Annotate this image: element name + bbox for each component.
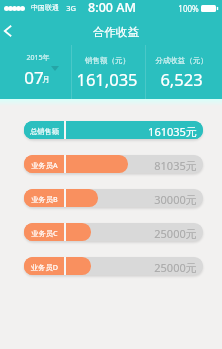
button[interactable]: 业务员A	[24, 155, 203, 173]
staticText: 30000元	[154, 192, 197, 207]
staticText: 161035元	[148, 124, 197, 139]
staticText: 2015年	[26, 53, 50, 63]
staticText: 07	[24, 66, 44, 89]
button[interactable]: 业务员C	[24, 223, 203, 241]
staticText: 25000元	[154, 226, 197, 241]
button[interactable]: 业务员D	[24, 257, 203, 275]
button[interactable]: Select month	[0, 44, 71, 102]
button[interactable]: Back	[0, 19, 20, 43]
staticText: 8:00 AM	[88, 0, 136, 15]
staticText: 分成收益（元）	[155, 56, 208, 65]
staticText: 25000元	[154, 260, 197, 275]
staticText: 6,523	[160, 68, 203, 90]
staticText: 业务员D	[31, 262, 58, 272]
staticText: 业务员A	[31, 160, 58, 170]
staticText: 业务员C	[31, 228, 58, 238]
button[interactable]: 总销售额	[24, 121, 203, 139]
staticText: 销售额（元）	[85, 56, 130, 65]
button[interactable]: 业务员B	[24, 189, 203, 207]
staticText: 总销售额	[30, 127, 59, 136]
staticText: 中国联通	[31, 3, 59, 12]
staticText: 100%	[178, 3, 199, 14]
staticText: 3G	[66, 3, 76, 13]
staticText: 81035元	[154, 158, 197, 173]
staticText: 业务员B	[31, 194, 58, 204]
staticText: 合作收益	[93, 25, 139, 39]
staticText: 161,035	[76, 68, 138, 90]
staticText: 月	[42, 75, 50, 84]
